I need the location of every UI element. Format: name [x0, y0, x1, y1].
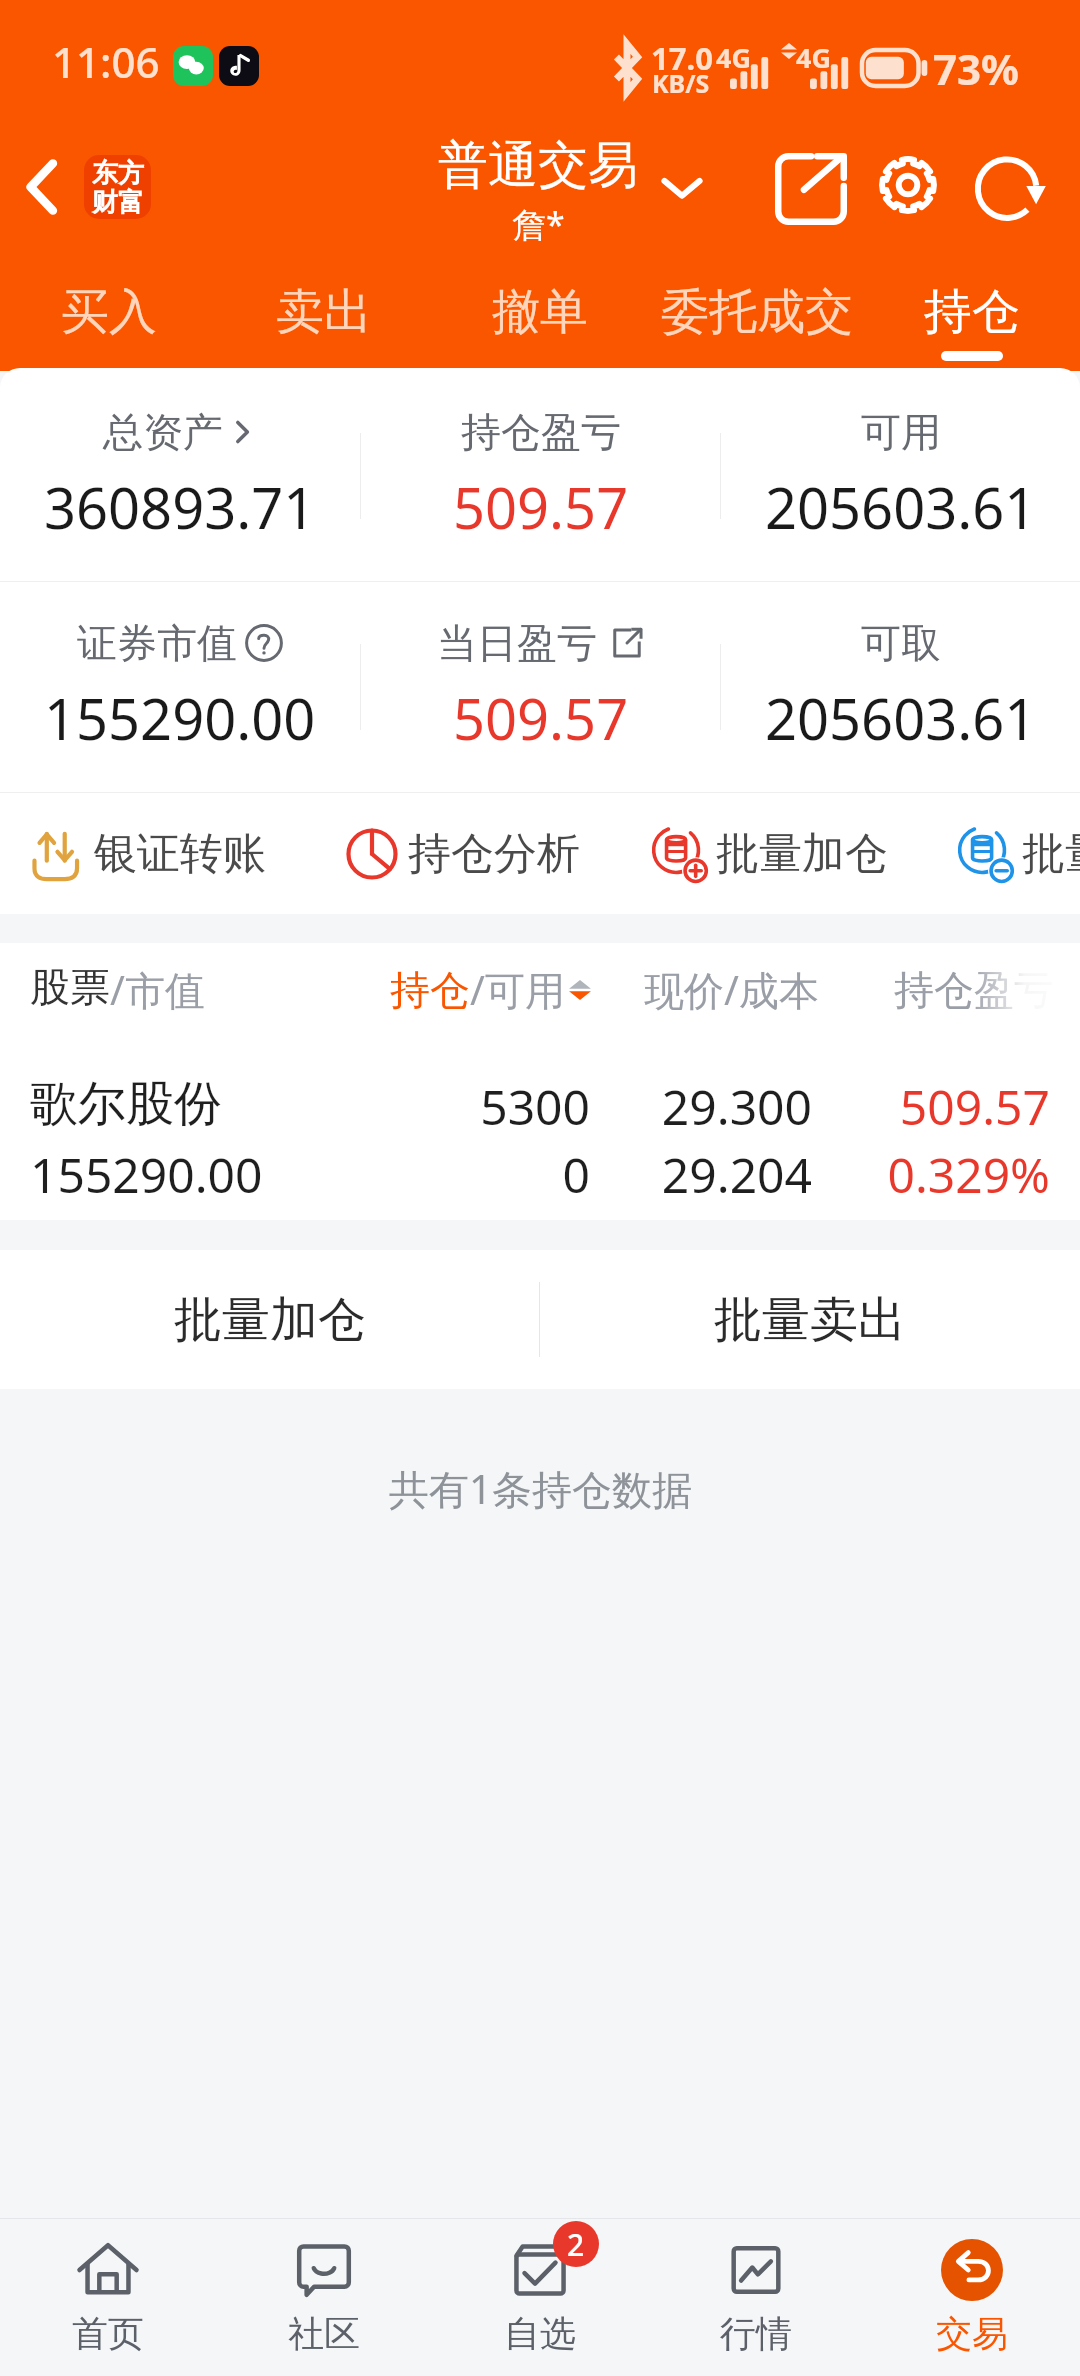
staticText: 普通交易: [438, 134, 638, 197]
staticText: 可用: [861, 407, 941, 457]
staticText: 自选: [504, 2311, 576, 2356]
staticText: 买入: [61, 282, 157, 342]
button[interactable]: Refresh: [972, 152, 1050, 230]
staticText: 詹*: [512, 201, 565, 247]
staticText: 卖出: [276, 282, 372, 342]
staticText: 29.204: [482, 1142, 812, 1207]
staticText: 首页: [72, 2311, 144, 2356]
staticText: 委托成交: [661, 282, 853, 342]
staticText: 批量卖出: [714, 1290, 906, 1350]
button[interactable]: 首页: [0, 2218, 216, 2376]
staticText: 批量加仓: [174, 1290, 366, 1350]
button[interactable]: 2: [432, 2218, 648, 2376]
staticText: 交易: [936, 2311, 1008, 2356]
button[interactable]: 卖出: [266, 282, 382, 382]
staticText: 持仓: [390, 965, 470, 1015]
staticText: 行情: [720, 2311, 792, 2356]
button[interactable]: 歌尔股份: [0, 1036, 1080, 1220]
staticText: 155290.00: [44, 680, 316, 756]
button[interactable]: 买入: [51, 282, 167, 382]
staticText: 可取: [861, 618, 941, 668]
staticText: 撤单: [492, 282, 588, 342]
staticText: 股票: [30, 962, 110, 1012]
staticText: 509.57: [453, 680, 629, 756]
staticText: 东方 财富: [92, 157, 144, 218]
staticText: /市值: [110, 962, 205, 1017]
staticText: 持仓盈亏: [894, 965, 1054, 1015]
staticText: 360893.71: [44, 469, 316, 545]
button[interactable]: 社区: [216, 2218, 432, 2376]
button[interactable]: 行情: [648, 2218, 864, 2376]
staticText: 批量减仓: [1022, 827, 1080, 881]
staticText: 共有1条持仓数据: [389, 1461, 692, 1516]
button[interactable]: 交易: [864, 2218, 1080, 2376]
button[interactable]: Settings: [869, 146, 947, 224]
button[interactable]: 持仓盈亏: [361, 371, 720, 581]
staticText: 509.57: [453, 469, 629, 545]
staticText: 证券市值: [77, 618, 237, 668]
staticText: 11:06: [52, 33, 160, 90]
staticText: 当日盈亏: [437, 618, 597, 668]
staticText: 持仓: [924, 282, 1020, 342]
staticText: 批量加仓: [716, 827, 888, 881]
staticText: 155290.00: [30, 1142, 263, 1207]
staticText: /可用: [470, 962, 565, 1017]
button[interactable]: 可用: [721, 371, 1080, 581]
staticText: 现价/成本: [644, 962, 819, 1017]
button[interactable]: 证券市值: [0, 582, 360, 792]
button[interactable]: Back: [8, 152, 78, 222]
button[interactable]: 委托成交: [657, 282, 857, 382]
button[interactable]: 持仓: [390, 962, 593, 1017]
staticText: 205603.61: [765, 680, 1037, 756]
staticText: 0.329%: [720, 1142, 1050, 1207]
button[interactable]: 批量减仓: [958, 793, 1080, 914]
staticText: 205603.61: [765, 469, 1037, 545]
button[interactable]: Switch account: [645, 150, 719, 224]
staticText: 歌尔股份: [30, 1074, 222, 1134]
button[interactable]: Share: [772, 150, 850, 228]
button[interactable]: 总资产: [0, 371, 360, 581]
button[interactable]: 批量卖出: [540, 1250, 1080, 1389]
staticText: 银证转账: [94, 827, 266, 881]
button[interactable]: 持仓分析: [344, 793, 580, 914]
button[interactable]: 批量加仓: [652, 793, 888, 914]
button[interactable]: 当日盈亏: [361, 582, 720, 792]
staticText: 509.57: [720, 1074, 1050, 1139]
staticText: 29.300: [482, 1074, 812, 1139]
button[interactable]: 银证转账: [30, 793, 266, 914]
staticText: 总资产: [103, 407, 223, 457]
button[interactable]: 可取: [721, 582, 1080, 792]
staticText: 4G: [716, 39, 751, 76]
staticText: 73%: [933, 40, 1019, 97]
button[interactable]: 东方 财富: [84, 155, 151, 219]
staticText: KB/S: [652, 66, 710, 100]
staticText: 持仓分析: [408, 827, 580, 881]
staticText: 2: [567, 2224, 585, 2265]
staticText: 5300: [260, 1074, 590, 1139]
button[interactable]: 持仓: [914, 282, 1030, 382]
button[interactable]: 撤单: [482, 282, 598, 382]
staticText: 4G: [796, 39, 831, 76]
staticText: 持仓盈亏: [461, 407, 621, 457]
button[interactable]: 批量加仓: [0, 1250, 539, 1389]
staticText: 17.0: [651, 37, 713, 79]
staticText: 0: [260, 1142, 590, 1207]
staticText: 社区: [288, 2311, 360, 2356]
